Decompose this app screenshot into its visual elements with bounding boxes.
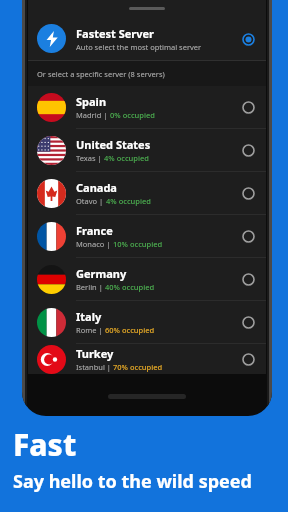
staticText: 0% occupied [110, 110, 155, 120]
staticText: 4% occupied [104, 153, 149, 163]
staticText: 4% occupied [106, 196, 151, 206]
staticText: Or select a specific server (8 servers) [37, 69, 165, 79]
staticText: Istanbul | [76, 362, 113, 372]
button[interactable]: Fastest server selected [237, 28, 259, 50]
staticText: Canada [76, 180, 117, 195]
staticText: 10% occupied [113, 239, 163, 249]
staticText: France [76, 223, 113, 238]
staticText: Fast [13, 424, 77, 465]
staticText: Monaco | [76, 239, 113, 249]
staticText: Spain [76, 94, 107, 109]
button[interactable]: Germany [28, 258, 266, 300]
button[interactable]: Select server [237, 139, 259, 161]
staticText: United States [76, 137, 151, 152]
button[interactable]: Select server [237, 182, 259, 204]
staticText: 70% occupied [113, 362, 163, 372]
staticText: Auto select the most optimal server [76, 42, 202, 52]
button[interactable]: Select server [237, 348, 259, 370]
button[interactable]: Fastest Server [28, 17, 266, 60]
button[interactable]: Select server [237, 96, 259, 118]
button[interactable]: Select server [237, 311, 259, 333]
staticText: Texas | [76, 153, 104, 163]
staticText: Turkey [76, 346, 114, 361]
button[interactable]: Canada [28, 172, 266, 214]
staticText: Fastest Server [76, 26, 154, 41]
staticText: 40% occupied [105, 282, 155, 292]
staticText: Italy [76, 309, 102, 324]
button[interactable]: Turkey [28, 344, 266, 374]
button[interactable]: Select server [237, 268, 259, 290]
button[interactable]: France [28, 215, 266, 257]
staticText: 60% occupied [105, 325, 155, 335]
staticText: Otavo | [76, 196, 106, 206]
staticText: Germany [76, 266, 127, 281]
staticText: Say hello to the wild speed [13, 469, 252, 494]
button[interactable]: United States [28, 129, 266, 171]
staticText: Rome | [76, 325, 105, 335]
button[interactable]: Select server [237, 225, 259, 247]
button[interactable]: Spain [28, 86, 266, 128]
staticText: Madrid | [76, 110, 110, 120]
button[interactable]: Italy [28, 301, 266, 343]
staticText: Berlin | [76, 282, 105, 292]
